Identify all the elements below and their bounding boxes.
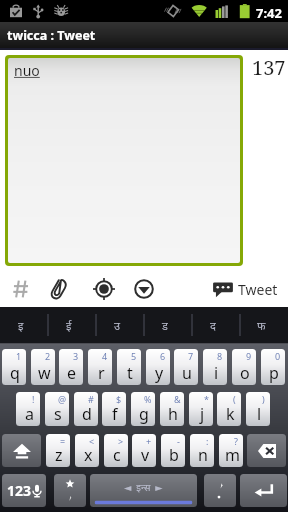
button[interactable]: %	[131, 392, 155, 426]
staticText: l	[257, 403, 262, 425]
button[interactable]: #	[74, 392, 98, 426]
button[interactable]: Add location	[86, 271, 122, 307]
staticText: nuo	[14, 61, 40, 80]
staticText: %	[144, 393, 152, 405]
staticText: j	[200, 403, 205, 425]
staticText: a	[25, 403, 34, 425]
button[interactable]: Numbers and voice input	[2, 474, 46, 507]
staticText: 2	[45, 350, 51, 362]
button[interactable]: 9	[232, 349, 256, 385]
staticText: ड	[162, 318, 168, 333]
staticText: द	[210, 318, 216, 333]
staticText: 7	[188, 350, 194, 362]
button[interactable]: Tweet	[212, 271, 278, 307]
button[interactable]: 5	[117, 349, 141, 385]
staticText: ◄ इन्स ►	[124, 481, 163, 494]
button[interactable]: 6	[146, 349, 170, 385]
button[interactable]: Enter	[240, 474, 287, 507]
button[interactable]: Hashtag	[3, 271, 39, 307]
staticText: t	[127, 362, 133, 384]
staticText: n	[198, 444, 208, 466]
staticText: 5	[131, 350, 137, 362]
button[interactable]: >	[104, 434, 128, 467]
staticText: w	[38, 362, 51, 384]
staticText: *	[204, 393, 209, 405]
staticText: i	[214, 362, 219, 384]
staticText: r	[98, 362, 105, 384]
button[interactable]: 7	[174, 349, 198, 385]
staticText: 9	[246, 350, 252, 362]
staticText: +	[146, 435, 152, 447]
staticText: 1	[16, 350, 22, 362]
staticText: =	[60, 435, 66, 447]
staticText: b	[169, 444, 179, 466]
button[interactable]: द	[192, 307, 240, 343]
button[interactable]: 8	[203, 349, 227, 385]
staticText: o	[240, 362, 250, 384]
button[interactable]: इ	[0, 307, 48, 343]
button[interactable]: More options	[126, 271, 162, 307]
button[interactable]: ई	[48, 307, 96, 343]
staticText: s	[54, 403, 62, 425]
button[interactable]: Backspace	[247, 434, 286, 467]
staticText: x	[84, 444, 93, 466]
button[interactable]: फ	[240, 307, 288, 343]
staticText: &	[174, 393, 181, 405]
staticText: v	[141, 444, 150, 466]
button[interactable]: !	[16, 392, 40, 426]
button[interactable]: :	[190, 434, 214, 467]
staticText: !	[32, 393, 35, 405]
staticText: फ	[257, 318, 266, 333]
button[interactable]: 1	[2, 349, 26, 385]
staticText: 0	[275, 350, 281, 362]
button[interactable]: Shift	[2, 434, 41, 467]
staticText: (	[233, 393, 236, 405]
button[interactable]: Attach photo	[40, 271, 76, 307]
staticText: -	[177, 435, 180, 447]
button[interactable]: ?	[219, 434, 243, 467]
staticText: c	[113, 444, 121, 466]
staticText: m	[225, 444, 240, 466]
staticText: 4	[102, 350, 108, 362]
staticText: Tweet	[238, 280, 278, 299]
button[interactable]: +	[132, 434, 156, 467]
staticText: इ	[18, 318, 24, 333]
staticText: >	[118, 435, 124, 447]
button[interactable]: Space	[90, 474, 197, 507]
button[interactable]: @	[45, 392, 69, 426]
staticText: ई	[66, 318, 72, 333]
staticText: ?	[234, 435, 238, 447]
button[interactable]: Period	[204, 474, 236, 507]
button[interactable]: 4	[88, 349, 112, 385]
button[interactable]: 2	[31, 349, 55, 385]
button[interactable]: 3	[59, 349, 83, 385]
staticText: q	[10, 362, 20, 384]
staticText: 3	[73, 350, 79, 362]
staticText: twicca : Tweet	[7, 27, 96, 44]
staticText: d	[82, 403, 92, 425]
staticText: k	[226, 403, 235, 425]
staticText: उ	[114, 318, 121, 333]
button[interactable]: *	[189, 392, 213, 426]
button[interactable]: )	[246, 392, 270, 426]
staticText: <	[89, 435, 95, 447]
button[interactable]: -	[161, 434, 185, 467]
staticText: g	[139, 403, 149, 425]
button[interactable]: ड	[144, 307, 192, 343]
button[interactable]: =	[46, 434, 70, 467]
button[interactable]: &	[160, 392, 184, 426]
button[interactable]: nuo	[8, 58, 240, 263]
staticText: @	[58, 393, 67, 405]
staticText: y	[155, 362, 164, 384]
button[interactable]: (	[217, 392, 241, 426]
button[interactable]: <	[75, 434, 99, 467]
button[interactable]: Symbols	[54, 474, 86, 507]
staticText: u	[182, 362, 192, 384]
staticText: 8	[217, 350, 223, 362]
staticText: p	[269, 362, 279, 384]
staticText: 123	[7, 481, 32, 500]
staticText: )	[262, 393, 265, 405]
button[interactable]: 0	[261, 349, 285, 385]
button[interactable]: उ	[96, 307, 144, 343]
button[interactable]: $	[102, 392, 126, 426]
